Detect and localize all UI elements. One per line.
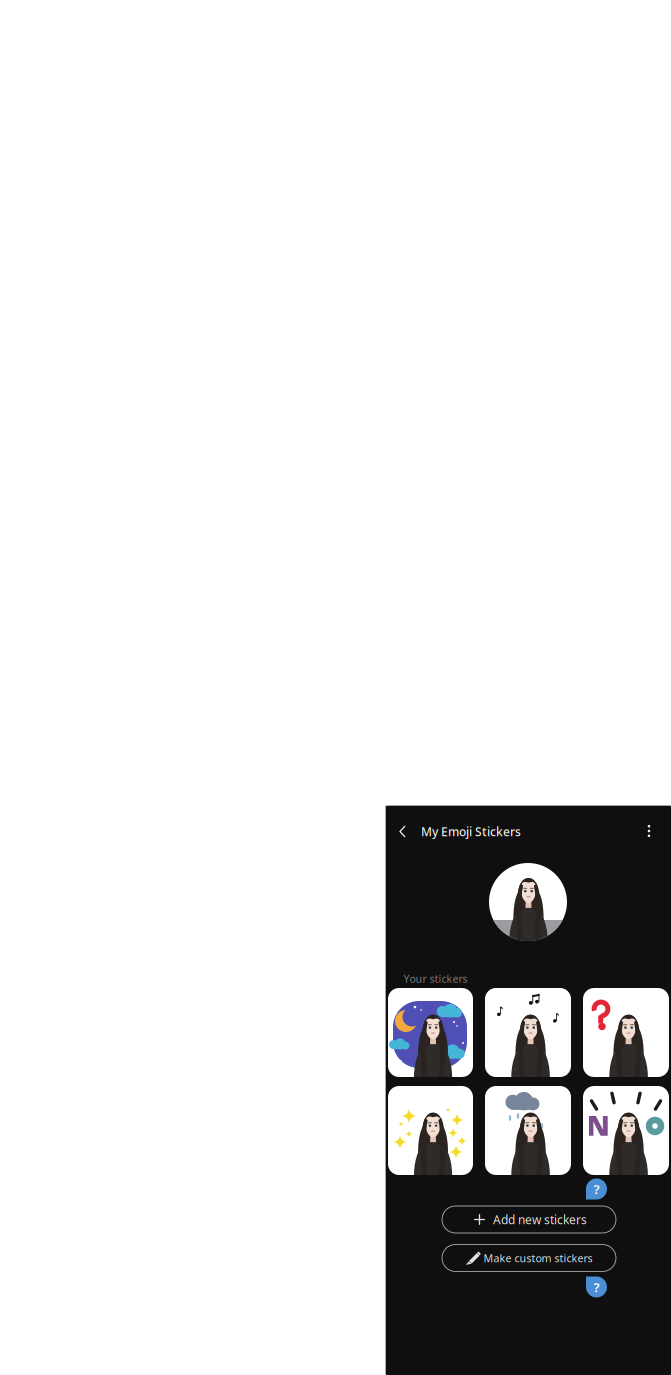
button[interactable]: More options: [640, 822, 658, 840]
button[interactable]: Add new stickers: [442, 1206, 616, 1233]
staticText: Add new stickers: [493, 1211, 587, 1227]
staticText: Your stickers: [403, 971, 467, 986]
staticText: Make custom stickers: [483, 1251, 592, 1265]
button[interactable]: My Emoji avatar: [489, 863, 567, 941]
button[interactable]: N: [583, 1086, 669, 1175]
staticText: ?: [593, 1180, 599, 1198]
staticText: ?: [593, 1278, 599, 1296]
button[interactable]: [388, 988, 473, 1077]
button[interactable]: Make custom stickers: [442, 1244, 616, 1271]
staticText: N: [586, 1106, 609, 1144]
button[interactable]: [583, 988, 669, 1077]
button[interactable]: Back: [391, 820, 413, 842]
button[interactable]: [485, 1086, 571, 1175]
button[interactable]: [388, 1086, 473, 1175]
button[interactable]: [485, 988, 571, 1077]
staticText: My Emoji Stickers: [421, 823, 521, 839]
